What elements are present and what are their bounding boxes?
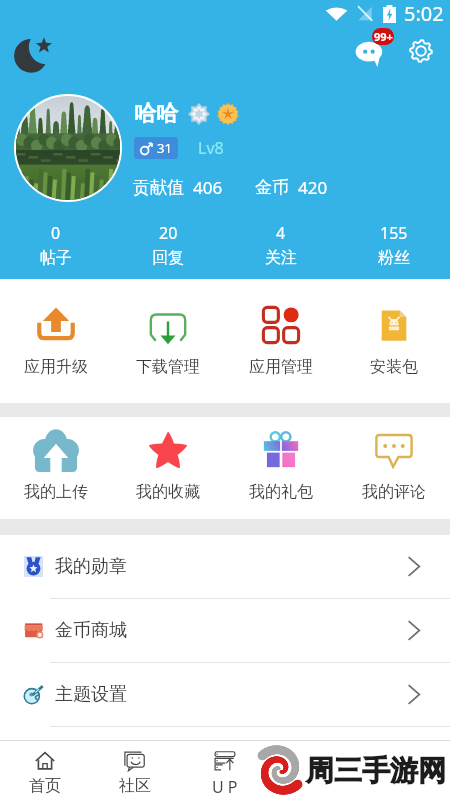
staticText: 20 bbox=[159, 222, 178, 244]
button[interactable]: U P bbox=[180, 741, 270, 800]
button[interactable]: 我的礼包 bbox=[224, 426, 337, 504]
button[interactable]: Avatar bbox=[16, 96, 120, 200]
staticText: 31 bbox=[157, 139, 172, 157]
staticText: 4 bbox=[276, 222, 286, 244]
button[interactable]: 我的评论 bbox=[337, 426, 450, 504]
button[interactable]: 金币商城 bbox=[0, 599, 450, 662]
staticText: 应用管理 bbox=[249, 357, 313, 377]
button[interactable]: 我的勋章 bbox=[0, 535, 450, 598]
button[interactable]: Night mode bbox=[12, 34, 54, 76]
staticText: 0 bbox=[51, 222, 61, 244]
button[interactable]: 应用升级 bbox=[0, 301, 112, 379]
staticText: 我的收藏 bbox=[136, 482, 200, 502]
staticText: 社区 bbox=[119, 776, 151, 796]
staticText: 贡献值 bbox=[133, 177, 184, 198]
button[interactable]: 4 bbox=[224, 222, 337, 274]
button[interactable]: Messages bbox=[355, 33, 389, 67]
button[interactable]: 社区 bbox=[90, 741, 180, 800]
staticText: 安装包 bbox=[370, 357, 418, 377]
button[interactable]: 安装包 bbox=[337, 301, 450, 379]
staticText: U P bbox=[212, 776, 238, 798]
button[interactable]: 下载管理 bbox=[112, 301, 224, 379]
button[interactable]: 我的上传 bbox=[0, 426, 112, 504]
button[interactable] bbox=[270, 741, 360, 800]
staticText: 我的勋章 bbox=[55, 555, 127, 578]
staticText: 我的上传 bbox=[24, 482, 88, 502]
button[interactable]: 首页 bbox=[0, 741, 90, 800]
button[interactable]: Settings bbox=[406, 36, 436, 66]
staticText: 哈哈 bbox=[134, 100, 178, 128]
staticText: 首页 bbox=[29, 776, 61, 796]
staticText: 我的评论 bbox=[362, 482, 426, 502]
staticText: 99+ bbox=[374, 29, 393, 44]
staticText: 金币商城 bbox=[55, 619, 127, 642]
button[interactable] bbox=[360, 741, 450, 800]
staticText: 金币 bbox=[255, 177, 289, 198]
button[interactable]: 20 bbox=[112, 222, 224, 274]
staticText: 406 bbox=[193, 176, 223, 199]
staticText: 周三手游网 bbox=[306, 753, 446, 788]
staticText: 我的礼包 bbox=[249, 482, 313, 502]
button[interactable]: 应用管理 bbox=[224, 301, 337, 379]
staticText: 155 bbox=[380, 222, 408, 244]
staticText: 粉丝 bbox=[378, 248, 410, 268]
staticText: 主题设置 bbox=[55, 683, 127, 706]
staticText: 420 bbox=[298, 176, 328, 199]
button[interactable]: 155 bbox=[337, 222, 450, 274]
staticText: 帖子 bbox=[40, 248, 72, 268]
staticText: 下载管理 bbox=[136, 357, 200, 377]
button[interactable]: 我的收藏 bbox=[112, 426, 224, 504]
button[interactable]: 主题设置 bbox=[0, 663, 450, 726]
staticText: 应用升级 bbox=[24, 357, 88, 377]
staticText: Lv8 bbox=[198, 137, 224, 159]
staticText: 5:02 bbox=[404, 0, 444, 27]
staticText: 回复 bbox=[152, 248, 184, 268]
button[interactable]: 0 bbox=[0, 222, 112, 274]
staticText: 关注 bbox=[265, 248, 297, 268]
